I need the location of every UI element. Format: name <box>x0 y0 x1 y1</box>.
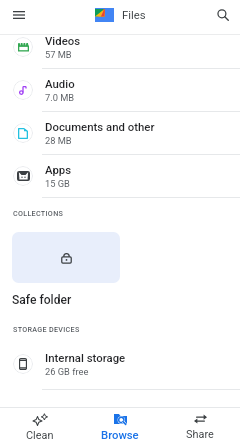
staticText: Share <box>186 428 214 441</box>
staticText: 7.0 MB <box>45 92 75 103</box>
staticText: Browse <box>101 429 139 442</box>
button[interactable]: Documents and other <box>0 112 240 154</box>
staticText: Internal storage <box>45 351 126 364</box>
button[interactable]: Share <box>160 408 240 447</box>
staticText: 57 MB <box>45 49 72 60</box>
button[interactable]: Audio <box>0 69 240 111</box>
button[interactable]: Search <box>213 5 232 24</box>
staticText: 15 GB <box>45 178 70 189</box>
staticText: Clean <box>26 429 54 442</box>
button[interactable]: Apps <box>0 155 240 197</box>
staticText: 28 MB <box>45 135 72 146</box>
button[interactable]: Internal storage <box>0 343 240 385</box>
staticText: Apps <box>45 163 72 176</box>
staticText: 26 GB free <box>45 366 89 377</box>
button[interactable]: Menu <box>9 5 28 24</box>
button[interactable] <box>12 232 120 283</box>
staticText: COLLECTIONS <box>13 209 64 217</box>
staticText: Safe folder <box>12 293 72 307</box>
staticText: STORAGE DEVICES <box>13 325 80 333</box>
staticText: Files <box>122 9 146 22</box>
button[interactable]: Browse <box>80 408 160 447</box>
button[interactable]: Clean <box>0 408 80 447</box>
staticText: Videos <box>45 35 81 47</box>
button[interactable]: Videos <box>0 35 240 68</box>
staticText: Documents and other <box>45 120 155 133</box>
staticText: Audio <box>45 77 75 90</box>
